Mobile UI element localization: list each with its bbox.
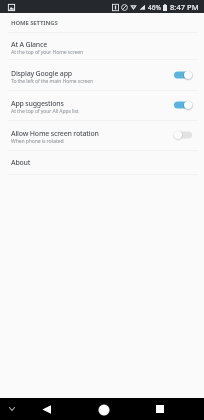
button[interactable]: At A Glance [0, 32, 204, 59]
staticText: Display Google app [11, 69, 72, 79]
button[interactable]: Allow Home screen rotation [0, 120, 204, 150]
staticText: 46% [148, 3, 162, 12]
button[interactable]: Switch on [172, 68, 194, 82]
staticText: At the top of your All Apps list [11, 108, 79, 115]
button[interactable]: Home [96, 402, 112, 418]
staticText: Allow Home screen rotation [11, 129, 99, 139]
staticText: At A Glance [11, 40, 48, 50]
staticText: About [11, 158, 31, 168]
button[interactable]: Recent apps [152, 401, 168, 417]
button[interactable]: About [0, 150, 204, 174]
button[interactable]: Switch off [172, 128, 194, 142]
staticText: At the top of your Home screen [11, 49, 83, 56]
staticText: To the left of the main Home screen [11, 78, 94, 85]
button[interactable]: Switch on [172, 98, 194, 112]
staticText: 8:47 PM [170, 2, 199, 12]
staticText: When phone is rotated [11, 138, 64, 145]
staticText: HOME SETTINGS [11, 19, 58, 27]
button[interactable]: Back [38, 401, 54, 417]
button[interactable]: Display Google app [0, 59, 204, 90]
button[interactable]: Hide keyboard [5, 402, 19, 416]
staticText: App suggestions [11, 99, 64, 109]
button[interactable]: App suggestions [0, 90, 204, 120]
